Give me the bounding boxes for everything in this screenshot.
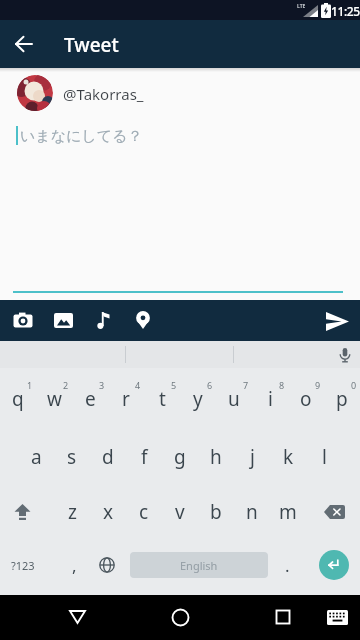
button[interactable]: ?123 [4,548,42,582]
staticText: b [210,499,222,525]
staticText: w [47,386,62,412]
button[interactable]: p [327,382,357,416]
button[interactable]: f [129,440,159,474]
button[interactable]: x [93,495,123,529]
button[interactable] [9,306,37,334]
button[interactable]: , [59,548,89,582]
staticText: ?123 [11,558,35,573]
staticText: @Takorras_ [63,84,144,104]
staticText: z [68,499,77,525]
button[interactable]: a [21,440,51,474]
staticText: 6 [207,379,213,391]
staticText: y [193,386,203,412]
button[interactable] [129,306,157,334]
staticText: c [139,499,149,525]
button[interactable]: g [165,440,195,474]
button[interactable] [49,306,77,334]
button[interactable] [334,344,356,366]
staticText: s [67,444,77,470]
staticText: v [175,499,185,525]
button[interactable]: z [57,495,87,529]
staticText: 0 [351,379,357,391]
button[interactable]: v [165,495,195,529]
staticText: h [210,444,222,470]
staticText: e [85,386,96,412]
button[interactable] [319,550,349,580]
staticText: t [159,386,166,412]
button[interactable] [162,599,198,635]
button[interactable]: y [183,382,213,416]
button[interactable]: h [201,440,231,474]
staticText: いまなにしてる？ [20,127,143,146]
button[interactable]: i [255,382,285,416]
staticText: 11:25 [331,3,360,19]
staticText: g [174,444,186,470]
button[interactable] [265,599,301,635]
button[interactable] [89,306,117,334]
staticText: 2 [63,379,69,391]
button[interactable]: w [39,382,69,416]
button[interactable] [322,306,352,336]
staticText: x [103,499,114,525]
button[interactable] [319,599,355,635]
button[interactable]: q [3,382,33,416]
button[interactable]: k [273,440,303,474]
button[interactable]: r [111,382,141,416]
button[interactable]: . [272,548,302,582]
button[interactable]: English [130,552,268,578]
staticText: 7 [243,379,249,391]
button[interactable] [4,494,40,530]
button[interactable] [89,547,125,583]
staticText: Tweet [64,32,119,58]
staticText: LTE [297,3,306,10]
button[interactable]: d [93,440,123,474]
button[interactable]: o [291,382,321,416]
staticText: r [122,386,130,412]
staticText: f [141,444,148,470]
button[interactable]: j [237,440,267,474]
staticText: i [268,386,273,412]
button[interactable]: m [273,495,303,529]
staticText: u [228,386,240,412]
staticText: k [283,444,294,470]
button[interactable]: u [219,382,249,416]
staticText: m [279,499,297,525]
staticText: l [322,444,327,470]
button[interactable] [59,599,95,635]
staticText: 5 [171,379,177,391]
staticText: q [12,386,24,412]
staticText: 3 [99,379,105,391]
button[interactable]: e [75,382,105,416]
staticText: o [300,386,312,412]
button[interactable]: t [147,382,177,416]
staticText: , [72,554,77,577]
staticText: d [102,444,114,470]
button[interactable]: b [201,495,231,529]
button[interactable] [316,494,352,530]
staticText: English [180,558,218,573]
button[interactable] [8,28,40,60]
staticText: n [246,499,258,525]
staticText: 8 [279,379,285,391]
staticText: a [31,444,42,470]
button[interactable]: l [309,440,339,474]
button[interactable]: n [237,495,267,529]
staticText: p [336,386,348,412]
staticText: 9 [315,379,321,391]
button[interactable]: s [57,440,87,474]
staticText: 4 [135,379,141,391]
staticText: j [250,444,255,470]
staticText: 1 [27,379,33,391]
staticText: . [285,554,290,577]
button[interactable]: c [129,495,159,529]
